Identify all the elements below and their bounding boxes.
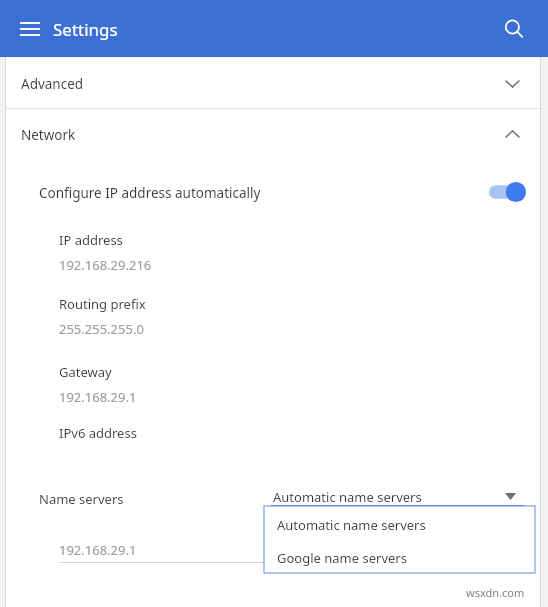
staticText: 255.255.255.0 — [59, 320, 144, 338]
staticText: Network — [21, 126, 76, 144]
staticText: Gateway — [59, 363, 112, 381]
staticText: Advanced — [21, 75, 84, 93]
button[interactable]: Open navigation menu — [14, 13, 46, 45]
staticText: 192.168.29.1 — [59, 541, 137, 559]
button[interactable]: Google name servers — [264, 540, 535, 573]
staticText: Routing prefix — [59, 295, 146, 313]
button[interactable]: Advanced — [6, 57, 540, 108]
staticText: 192.168.29.1 — [59, 388, 137, 406]
staticText: Settings — [53, 18, 118, 41]
staticText: Name servers — [39, 490, 124, 508]
button[interactable]: Automatic name servers — [271, 482, 524, 508]
staticText: Google name servers — [277, 549, 407, 567]
button[interactable]: Configure IP address automatically — [6, 170, 540, 216]
staticText: IPv6 address — [59, 424, 137, 442]
staticText: Automatic name servers — [273, 488, 422, 506]
staticText: Configure IP address automatically — [39, 184, 261, 202]
staticText: wsxdn.com — [466, 585, 525, 600]
staticText: 192.168.29.216 — [59, 256, 152, 274]
button[interactable]: Search — [498, 13, 530, 45]
staticText: Automatic name servers — [277, 516, 426, 534]
button[interactable]: Network — [6, 109, 540, 157]
other: Configure IP address automatically toggl… — [488, 181, 528, 203]
staticText: IP address — [59, 231, 123, 249]
button[interactable]: Automatic name servers — [264, 506, 535, 540]
